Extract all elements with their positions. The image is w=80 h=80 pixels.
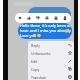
button[interactable]: Love [15,13,24,23]
button[interactable]: Like [24,13,33,23]
staticText: Hello there, it's only been an [20,23,72,28]
button[interactable]: More reactions [60,13,69,23]
button[interactable]: Dislike [33,13,42,23]
staticText: Unfavourite [31,51,51,56]
button[interactable]: Surprised [51,13,60,23]
button[interactable]: Copy [28,65,74,73]
button[interactable]: Translate [28,73,74,80]
button[interactable]: Reply [28,41,74,49]
staticText: Edit [31,59,38,64]
staticText: Love you [20,33,37,38]
button[interactable]: Unfavourite [28,49,74,57]
button[interactable]: Laugh [42,13,51,23]
staticText: Reply [31,43,40,48]
staticText: hour and I miss you already [20,28,71,33]
button[interactable]: Hello there, it's only been an [18,23,72,39]
staticText: Copy [31,67,40,72]
staticText: Translate [31,75,47,80]
button[interactable]: Edit [28,57,74,65]
